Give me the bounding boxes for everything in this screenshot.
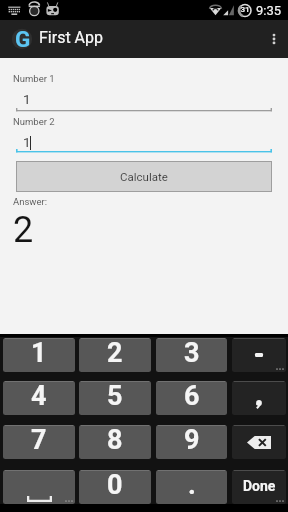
button[interactable]: . [156, 470, 227, 504]
staticText: 3 [184, 338, 200, 369]
staticText: 7 [31, 425, 47, 456]
button[interactable]: More options [260, 20, 288, 58]
staticText: G [15, 26, 31, 52]
button[interactable]: Space [3, 470, 75, 504]
staticText: 9:35 [256, 3, 282, 18]
button[interactable]: 7 [3, 425, 75, 459]
button[interactable]: 3 [156, 338, 227, 372]
staticText: 31 [240, 5, 250, 14]
button[interactable]: 4 [3, 381, 75, 415]
staticText: 6 [184, 381, 200, 412]
staticText: 8 [107, 425, 123, 456]
staticText: 4 [31, 381, 47, 412]
staticText: 5 [107, 381, 123, 412]
button[interactable]: 5 [79, 381, 151, 415]
button[interactable]: 6 [156, 381, 227, 415]
button[interactable]: Calculate [16, 161, 272, 192]
button[interactable]: Done [232, 470, 286, 504]
staticText: 9 [184, 425, 200, 456]
button[interactable]: 8 [79, 425, 151, 459]
button[interactable]: Comma [232, 381, 286, 415]
staticText: Answer: [13, 196, 48, 207]
staticText: 1 [23, 91, 31, 107]
staticText: Number 1 [13, 73, 55, 84]
staticText: 2 [13, 209, 34, 251]
staticText: . [188, 470, 196, 501]
staticText: 0 [107, 470, 123, 501]
button[interactable]: 0 [79, 470, 151, 504]
button[interactable]: Backspace [232, 425, 286, 459]
button[interactable]: 2 [79, 338, 151, 372]
staticText: First App [39, 28, 104, 47]
staticText: 1 [23, 134, 31, 150]
button[interactable]: Minus [232, 338, 286, 372]
staticText: 2 [107, 338, 123, 369]
button[interactable]: 1 [3, 338, 75, 372]
staticText: Done [243, 478, 276, 494]
staticText: Number 2 [13, 116, 55, 127]
staticText: Calculate [120, 170, 168, 183]
button[interactable]: 9 [156, 425, 227, 459]
staticText: 1 [31, 338, 47, 369]
